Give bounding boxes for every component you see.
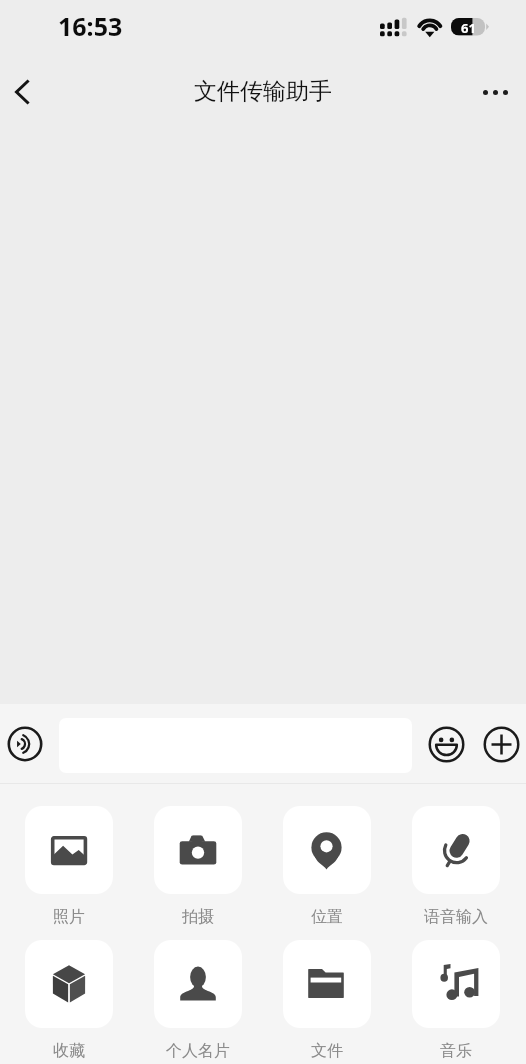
staticText: 文件传输助手 <box>194 77 332 106</box>
button[interactable]: 收藏 <box>25 940 113 1028</box>
button[interactable]: 照片 <box>25 806 113 894</box>
staticText: 61 <box>461 19 476 37</box>
staticText: 收藏 <box>53 1041 85 1061</box>
button[interactable]: Voice message <box>7 726 43 762</box>
staticText: 语音输入 <box>424 907 488 927</box>
button[interactable]: 个人名片 <box>154 940 242 1028</box>
staticText: 16:53 <box>58 9 123 43</box>
button[interactable]: More functions <box>483 726 520 763</box>
button[interactable]: 语音输入 <box>412 806 500 894</box>
button[interactable]: Back <box>0 70 44 114</box>
button[interactable]: More options <box>471 68 519 116</box>
staticText: 位置 <box>311 907 343 927</box>
staticText: 文件 <box>311 1041 343 1061</box>
button[interactable]: 文件 <box>283 940 371 1028</box>
button[interactable]: 拍摄 <box>154 806 242 894</box>
button[interactable]: Emoji <box>428 726 465 763</box>
staticText: 照片 <box>53 907 85 927</box>
button[interactable]: 音乐 <box>412 940 500 1028</box>
staticText: 音乐 <box>440 1041 472 1061</box>
staticText: 个人名片 <box>166 1041 230 1061</box>
staticText: 拍摄 <box>182 907 214 927</box>
button[interactable]: 位置 <box>283 806 371 894</box>
